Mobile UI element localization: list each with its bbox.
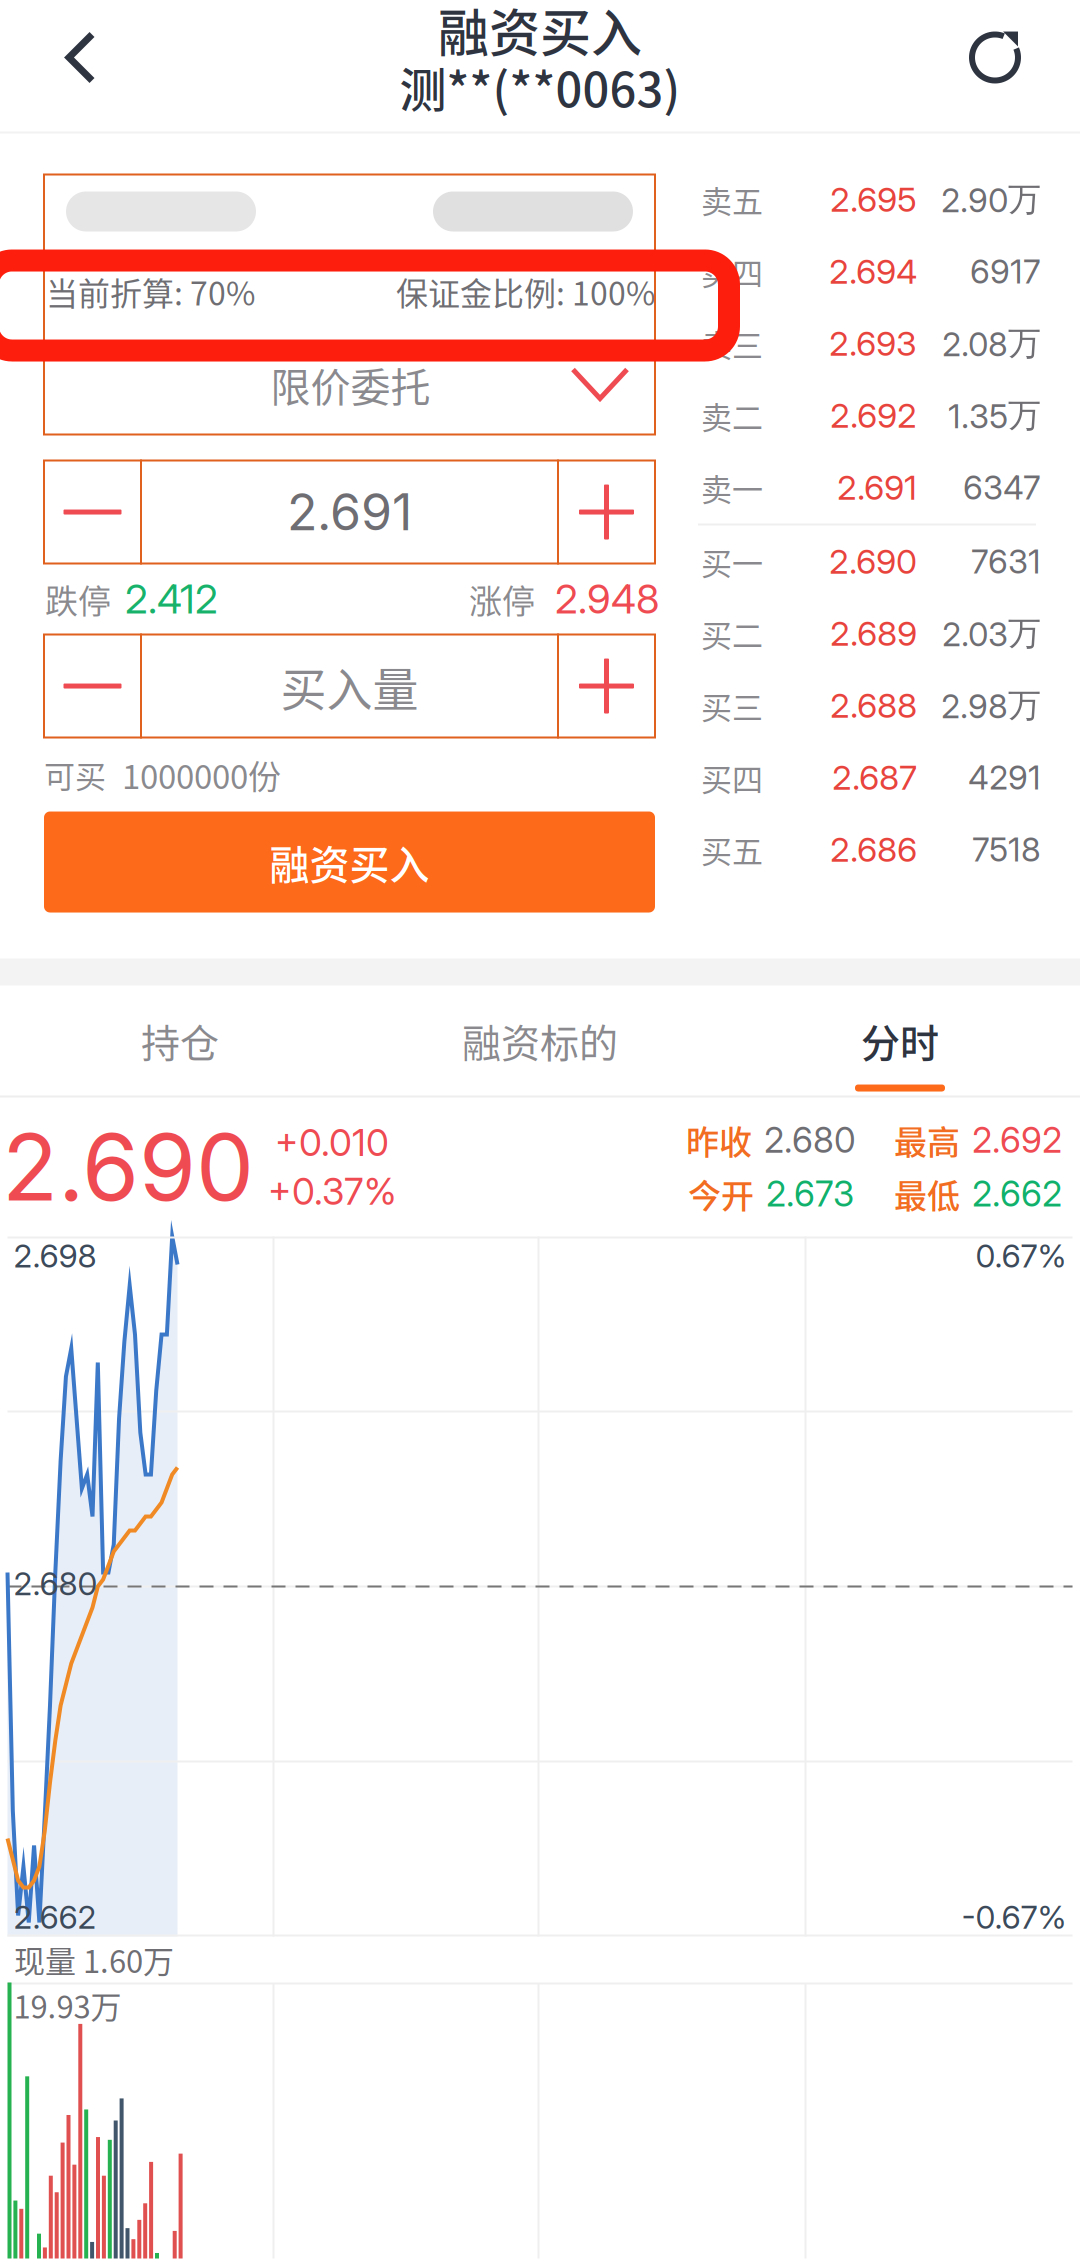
staticText: 持仓	[141, 1012, 219, 1069]
staticText: 可买	[44, 752, 106, 797]
staticText: 最高	[894, 1116, 960, 1164]
staticText: 涨停	[469, 575, 535, 623]
staticText: 跌停	[45, 575, 111, 623]
staticText: 7518	[972, 829, 1041, 869]
staticText: 2.689	[830, 613, 917, 654]
staticText: 2.694	[829, 251, 917, 292]
staticText: 限价委托	[270, 355, 430, 413]
staticText: 买四	[701, 755, 763, 800]
staticText: 2.695	[830, 179, 917, 220]
button[interactable]: Increase	[558, 460, 655, 563]
staticText: 2.698	[13, 1236, 96, 1275]
button[interactable]: 持仓	[0, 985, 360, 1095]
button[interactable]: 融资标的	[360, 985, 720, 1095]
button[interactable]: Decrease	[44, 634, 141, 737]
staticText: 2.692	[830, 395, 917, 436]
staticText: 2.692	[972, 1119, 1062, 1161]
button[interactable]: Refresh	[947, 0, 1058, 114]
staticText: 2.673	[766, 1173, 854, 1215]
staticText: 4291	[968, 757, 1041, 797]
staticText: +0.010	[275, 1120, 389, 1165]
staticText: 19.93万	[13, 1982, 121, 2027]
staticText: 2.662	[13, 1898, 96, 1936]
staticText: 卖二	[701, 393, 763, 438]
staticText: 2.688	[830, 685, 917, 726]
staticText: 2.691	[837, 467, 917, 508]
staticText: 6917	[970, 251, 1041, 291]
staticText: 卖一	[701, 465, 763, 510]
staticText: 融资买入	[438, 0, 642, 66]
staticText: 今开	[688, 1170, 754, 1218]
staticText: 2.686	[830, 829, 917, 870]
staticText: 2.03万	[942, 613, 1041, 654]
staticText: 2.948	[555, 575, 659, 623]
staticText: 1000000份	[122, 751, 281, 798]
staticText: 6347	[963, 467, 1041, 507]
staticText: 测**(**0063)	[399, 52, 680, 120]
staticText: 2.680	[13, 1564, 97, 1603]
staticText: 卖四	[701, 249, 763, 294]
staticText: 分时	[861, 1012, 939, 1069]
staticText: 买五	[701, 827, 763, 872]
button[interactable]: Increase	[558, 634, 655, 737]
staticText: 融资标的	[462, 1012, 618, 1069]
staticText: 2.693	[829, 323, 917, 364]
staticText: 0.67%	[975, 1236, 1066, 1275]
staticText: 2.08万	[942, 323, 1041, 364]
button[interactable]: 融资买入	[44, 811, 655, 912]
button[interactable]: Back	[38, 0, 123, 114]
button[interactable]: Decrease	[44, 460, 141, 563]
staticText: 最低	[894, 1170, 960, 1218]
button[interactable]: 限价委托	[44, 334, 655, 434]
staticText: -0.67%	[961, 1898, 1066, 1936]
staticText: 2.690	[829, 541, 917, 582]
staticText: 2.680	[764, 1119, 856, 1161]
staticText: 2.691	[287, 482, 412, 542]
staticText: 2.412	[125, 575, 218, 623]
staticText: 7631	[971, 541, 1041, 581]
staticText: 2.662	[972, 1173, 1062, 1215]
staticText: 保证金比例: 100%	[396, 268, 655, 315]
button[interactable]: 分时	[720, 985, 1080, 1095]
staticText: 买一	[701, 539, 763, 584]
staticText: 现量 1.60万	[14, 1937, 174, 1982]
staticText: 卖五	[701, 177, 763, 222]
staticText: 买三	[701, 683, 763, 728]
staticText: 2.98万	[941, 685, 1041, 726]
staticText: 融资买入	[269, 833, 429, 891]
staticText: 买入量	[280, 653, 418, 719]
staticText: 2.690	[2, 1111, 254, 1223]
staticText: 卖三	[701, 321, 763, 366]
staticText: 2.90万	[941, 179, 1041, 220]
staticText: 2.687	[832, 757, 917, 798]
staticText: +0.37%	[268, 1169, 396, 1214]
staticText: 昨收	[686, 1116, 752, 1164]
staticText: 当前折算: 70%	[46, 268, 255, 315]
staticText: 买二	[701, 611, 763, 656]
staticText: 1.35万	[948, 395, 1041, 436]
